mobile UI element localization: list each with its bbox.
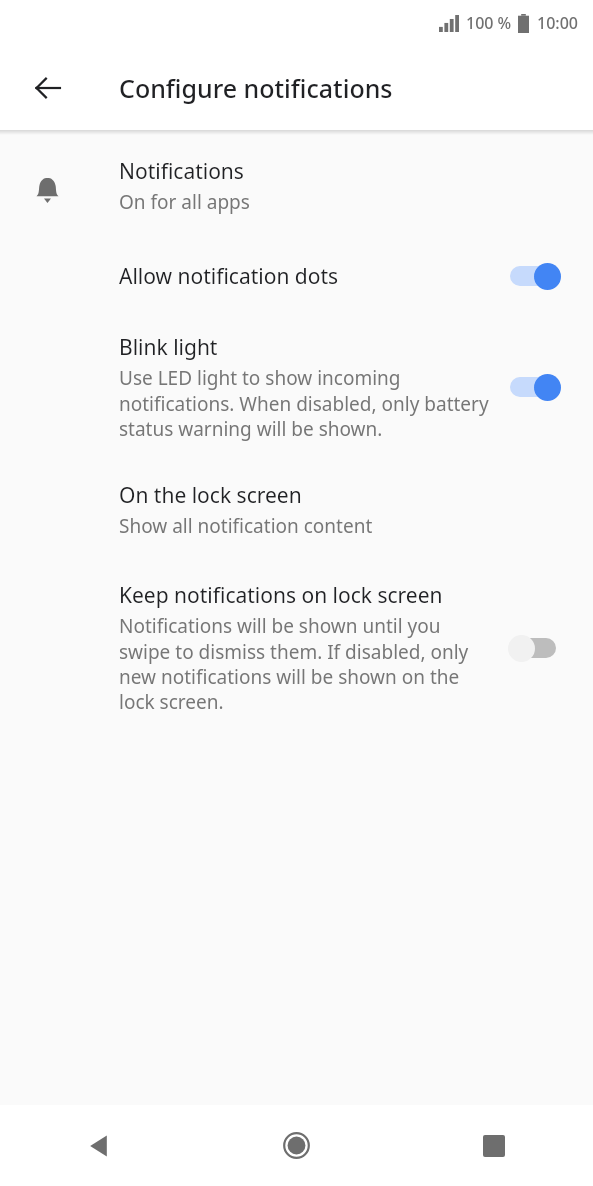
staticText: On the lock screen [119,481,302,510]
staticText: Notifications [119,157,244,186]
button[interactable]: Toggle off [508,631,566,665]
button[interactable]: Toggle on [508,259,566,293]
staticText: 10:00 [537,12,578,34]
button[interactable]: Recent apps [395,1105,593,1186]
staticText: On for all apps [119,189,250,215]
button[interactable]: Home [197,1105,395,1186]
staticText: Allow notification dots [119,262,339,291]
staticText: Show all notification content [119,513,373,539]
button[interactable]: Notifications [0,135,593,215]
button[interactable]: On the lock screen [0,441,593,539]
staticText: Keep notifications on lock screen [119,581,443,610]
button[interactable]: Back [22,62,74,114]
staticText: Configure notifications [119,71,393,105]
button[interactable]: Keep notifications on lock screen [0,539,593,714]
button[interactable]: Blink light [0,293,593,441]
staticText: 100 % [466,12,512,34]
staticText: Use LED light to show incoming notificat… [119,365,489,441]
button[interactable]: Allow notification dots [0,215,593,293]
staticText: Notifications will be shown until you sw… [119,613,489,714]
button[interactable]: Toggle on [508,370,566,404]
button[interactable]: Back [0,1105,197,1186]
staticText: Blink light [119,333,218,362]
